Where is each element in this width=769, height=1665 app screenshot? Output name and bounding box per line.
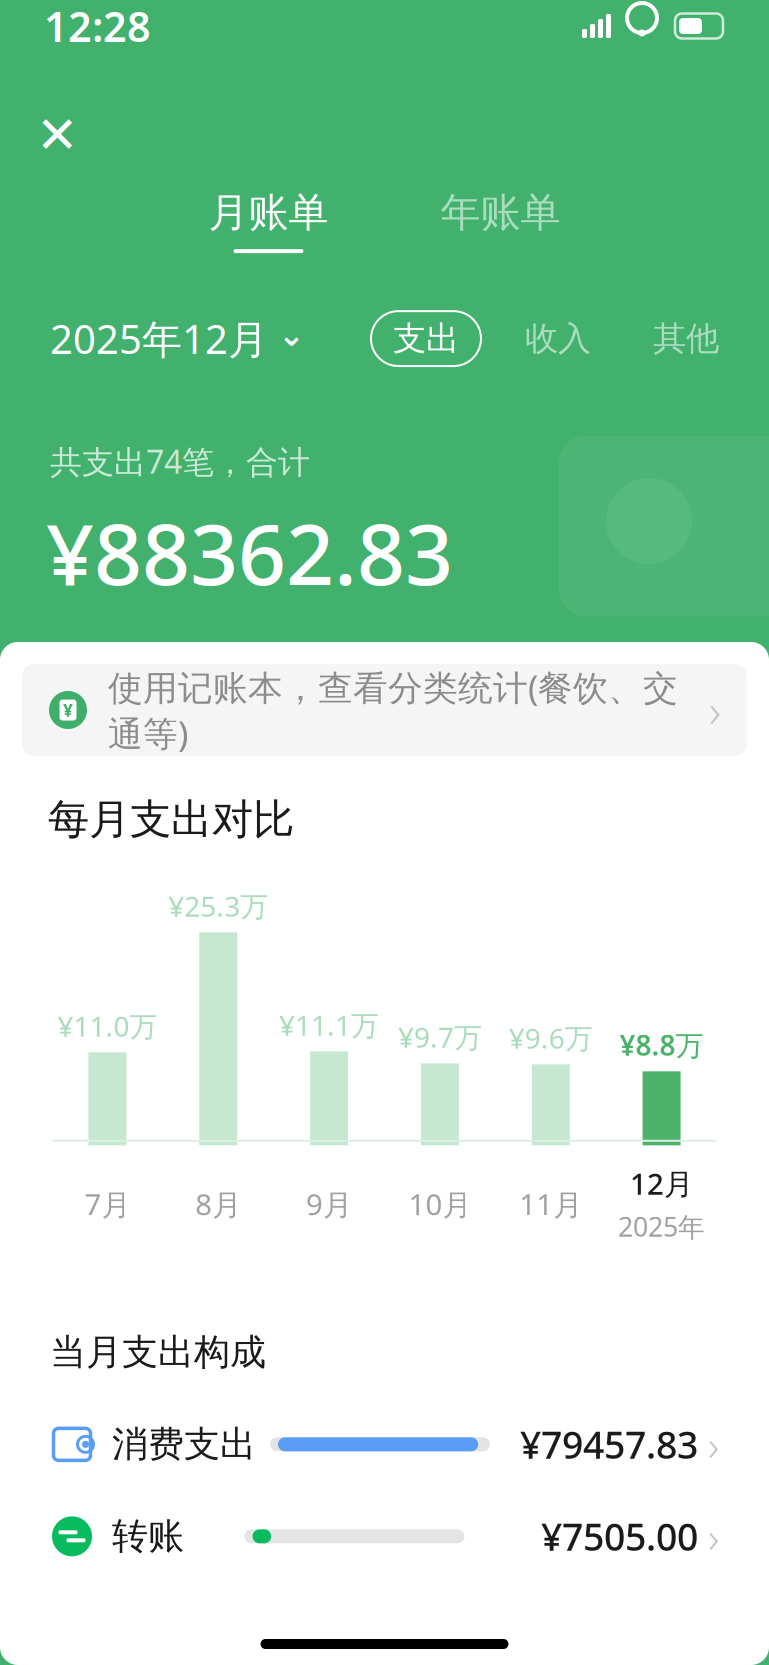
staticText: 其他 <box>653 318 719 359</box>
staticText: 月账单 <box>208 188 328 237</box>
button[interactable]: 支出 <box>371 311 481 366</box>
button[interactable]: 收入 <box>525 318 591 359</box>
button[interactable]: 年账单 <box>440 188 560 253</box>
staticText: ✕ <box>36 106 78 164</box>
staticText: › <box>708 1508 719 1565</box>
staticText: ¥8.8万 <box>620 1026 704 1063</box>
button[interactable]: 月账单 <box>208 188 328 253</box>
button[interactable]: 其他 <box>653 318 719 359</box>
staticText: 12月 <box>630 1164 693 1203</box>
staticText: 10月 <box>408 1184 471 1223</box>
staticText: ¥79457.83 <box>520 1420 698 1469</box>
staticText: 收入 <box>525 318 591 359</box>
staticText: ¥9.6万 <box>509 1019 593 1056</box>
staticText: 使用记账本，查看分类统计(餐饮、交通等) <box>108 664 678 756</box>
button[interactable]: 转账 <box>0 1490 769 1582</box>
staticText: 每月支出对比 <box>48 794 294 845</box>
staticText: ¥88362.83 <box>46 497 453 608</box>
staticText: › <box>709 680 721 740</box>
button[interactable]: ¥ <box>22 664 747 756</box>
staticText: 9月 <box>306 1184 352 1223</box>
staticText: 8月 <box>195 1184 241 1223</box>
staticText: 转账 <box>112 1514 184 1558</box>
staticText: 支出 <box>393 318 459 359</box>
staticText: 12:28 <box>44 0 151 53</box>
button[interactable]: Close <box>26 104 88 166</box>
staticText: ¥11.0万 <box>57 1007 157 1044</box>
staticText: 11月 <box>519 1184 582 1223</box>
staticText: 共支出74笔，合计 <box>50 440 310 483</box>
staticText: ¥7505.00 <box>541 1512 698 1561</box>
button[interactable]: 2025年12月 <box>50 312 305 365</box>
staticText: ⌄ <box>278 316 305 353</box>
staticText: ¥25.3万 <box>168 887 268 924</box>
staticText: 当月支出构成 <box>50 1330 266 1374</box>
staticText: › <box>708 1416 719 1473</box>
button[interactable]: 消费支出 <box>0 1398 769 1490</box>
staticText: 2025年 <box>618 1209 705 1244</box>
staticText: ¥11.1万 <box>279 1006 379 1043</box>
staticText: 7月 <box>84 1184 130 1223</box>
staticText: ¥ <box>63 698 73 721</box>
staticText: 年账单 <box>440 188 560 237</box>
staticText: 2025年12月 <box>50 312 268 365</box>
staticText: 消费支出 <box>112 1422 256 1466</box>
staticText: ¥9.7万 <box>398 1018 482 1055</box>
